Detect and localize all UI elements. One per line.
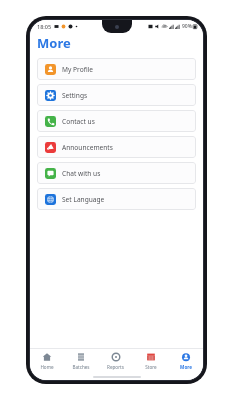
staticText: My Profile [62,65,94,74]
staticText: Set Language [62,195,105,204]
staticText: Store [145,364,157,370]
button[interactable]: Contact us [37,110,196,132]
staticText: Settings [62,91,88,100]
staticText: Batches [72,364,90,370]
button[interactable]: Chat with us [37,162,196,184]
button[interactable]: My Profile [37,58,196,80]
staticText: Contact us [62,117,95,126]
staticText: Chat with us [62,169,101,178]
button[interactable]: Batches [64,349,98,373]
staticText: Announcements [62,143,113,152]
button[interactable]: Reports [98,349,133,373]
staticText: 90% [182,23,192,30]
button[interactable]: More [168,349,203,373]
button[interactable]: Settings [37,84,196,106]
staticText: Reports [107,364,124,370]
staticText: 18:05 [37,23,52,30]
staticText: More [37,34,71,52]
button[interactable]: Set Language [37,188,196,210]
button[interactable]: Home [30,349,64,373]
button[interactable]: Announcements [37,136,196,158]
staticText: More [180,364,192,370]
button[interactable]: Store [133,349,168,373]
staticText: Home [40,364,54,370]
